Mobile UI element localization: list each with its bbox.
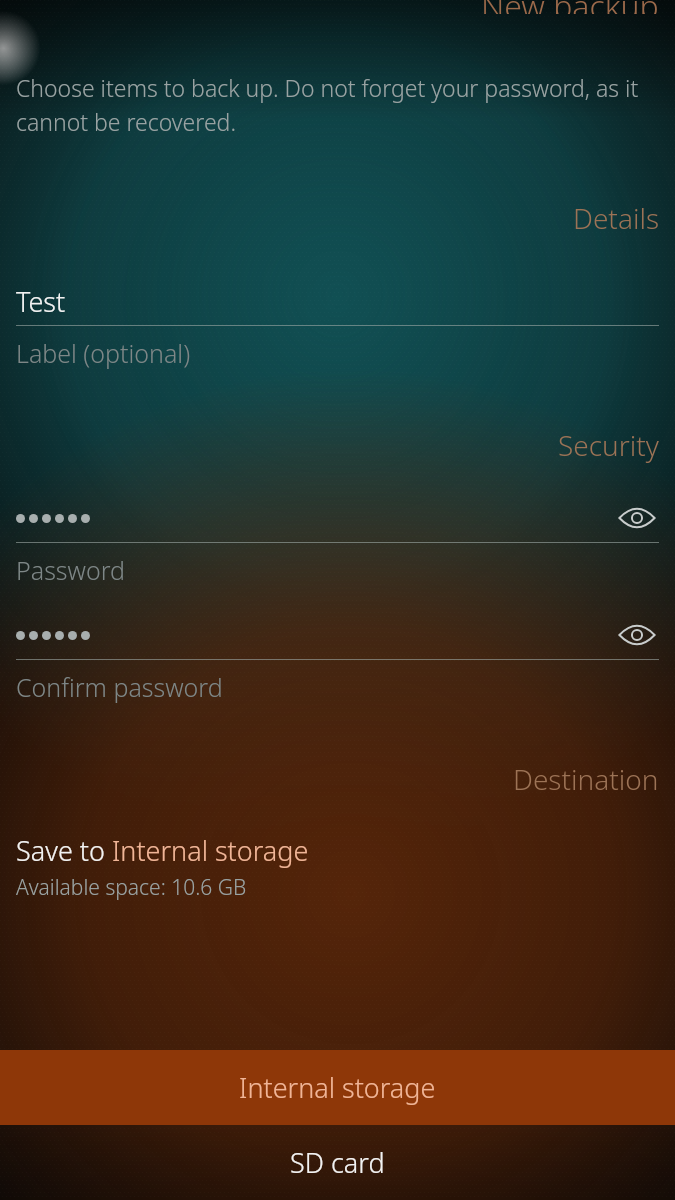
staticText: Details [573,199,659,237]
button[interactable]: SD card [0,1125,675,1200]
staticText: SD card [290,1144,385,1181]
staticText: Internal storage [239,1069,436,1106]
button[interactable]: Show confirm password [615,613,659,657]
button[interactable]: Show password [0,494,675,587]
staticText: Choose items to back up. Do not forget y… [16,72,659,137]
staticText: Password [16,553,125,587]
staticText: Confirm password [16,670,223,704]
staticText: Available space: 10.6 GB [16,873,247,902]
button[interactable]: Internal storage [0,1050,675,1125]
staticText: Save to Internal storage [16,832,309,869]
button[interactable]: Show password [615,496,659,540]
button[interactable]: Test [0,277,675,370]
button[interactable]: Save to Internal storage [0,832,675,902]
staticText: New backup [481,0,659,14]
staticText: Destination [513,760,659,798]
staticText: Test [16,283,66,320]
staticText: Security [558,426,659,464]
staticText: Label (optional) [16,336,191,370]
button[interactable]: Show confirm password [0,611,675,704]
